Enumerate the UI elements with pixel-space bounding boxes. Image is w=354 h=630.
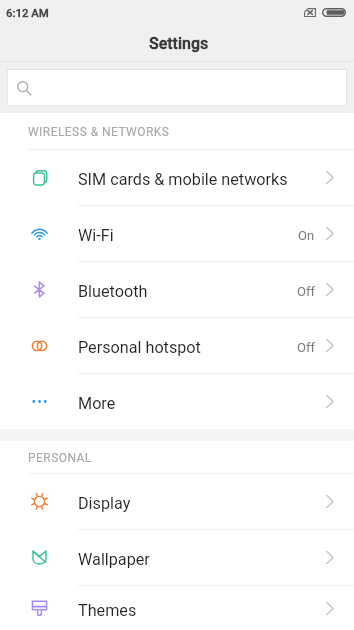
- staticText: PERSONAL: [28, 451, 92, 465]
- staticText: Settings: [149, 34, 209, 53]
- button[interactable]: More: [0, 374, 354, 429]
- button[interactable]: Personal hotspot: [0, 318, 354, 374]
- staticText: Wallpaper: [78, 550, 326, 569]
- staticText: Wi-Fi: [78, 226, 298, 245]
- button[interactable]: Wi-Fi: [0, 206, 354, 262]
- staticText: Themes: [78, 601, 326, 620]
- staticText: Display: [78, 494, 326, 513]
- button[interactable]: SIM cards & mobile networks: [0, 150, 354, 206]
- staticText: More: [78, 394, 326, 413]
- staticText: WIRELESS & NETWORKS: [28, 125, 170, 139]
- button[interactable]: Themes: [0, 586, 354, 630]
- button[interactable]: Display: [0, 474, 354, 530]
- staticText: On: [298, 228, 315, 243]
- staticText: SIM cards & mobile networks: [78, 170, 326, 189]
- staticText: Personal hotspot: [78, 338, 297, 357]
- other: No SIM card: [304, 8, 316, 17]
- staticText: Off: [297, 284, 315, 299]
- button[interactable]: Search: [7, 69, 347, 106]
- button[interactable]: Wallpaper: [0, 530, 354, 586]
- staticText: Off: [297, 340, 315, 355]
- button[interactable]: Bluetooth: [0, 262, 354, 318]
- staticText: Bluetooth: [78, 282, 297, 301]
- staticText: 6:12 AM: [6, 6, 49, 19]
